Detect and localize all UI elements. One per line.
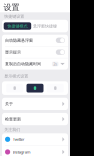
button[interactable]: Instagram [2, 146, 68, 156]
staticText: 快捷键设置 [4, 14, 24, 19]
staticText: 快捷键模式 [7, 24, 27, 28]
button[interactable]: 悬浮窗快捷键 [31, 22, 59, 30]
staticText: 关于 [5, 101, 13, 106]
button[interactable]: 检查更新 [2, 113, 68, 125]
staticText: 悬浮窗快捷键 [33, 24, 57, 28]
button[interactable]: 显示提示 [2, 46, 68, 58]
button[interactable]: 自动隐藏悬浮窗 [2, 35, 68, 46]
staticText: 设置 [3, 2, 19, 12]
staticText: 显示提示 [5, 50, 21, 55]
button[interactable]: Dark mode [26, 84, 43, 92]
button[interactable]: 复制后自动隐藏时间 [2, 58, 68, 70]
staticText: 复制后自动隐藏时间 [5, 62, 41, 66]
staticText: 自动隐藏悬浮窗 [5, 38, 33, 43]
staticText: 关注我们 [4, 127, 20, 132]
staticText: Twitter [13, 137, 25, 142]
staticText: 检查更新 [5, 117, 21, 121]
staticText: 显示模式设置 [4, 74, 28, 78]
staticText: Instagram [13, 149, 31, 155]
staticText: 2s [53, 61, 57, 67]
button[interactable]: Light mode [47, 84, 64, 92]
button[interactable]: Twitter [2, 133, 68, 145]
button[interactable]: 关于 [2, 98, 68, 110]
button[interactable]: 快捷键模式 [4, 22, 31, 30]
button[interactable]: Light mode [6, 84, 23, 92]
